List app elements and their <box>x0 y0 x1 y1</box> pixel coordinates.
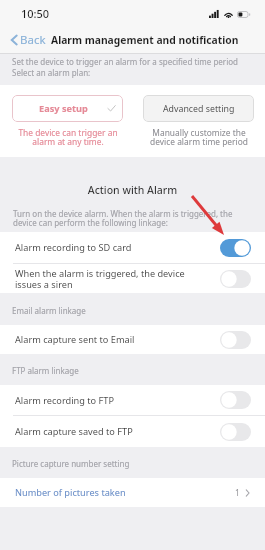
staticText: Manually customize the device alarm time… <box>150 127 248 148</box>
button[interactable]: Alarm capture saved to FTP <box>0 416 265 447</box>
staticText: Alarm capture sent to Email <box>15 333 220 346</box>
staticText: 1 <box>235 487 240 499</box>
staticText: Email alarm linkage <box>12 305 86 316</box>
staticText: Alarm recording to FTP <box>15 394 220 407</box>
staticText: The device can trigger an alarm at any t… <box>18 127 118 148</box>
button[interactable]: Alarm capture sent to Email <box>0 325 265 354</box>
button[interactable]: Back <box>10 32 46 48</box>
staticText: Alarm capture saved to FTP <box>15 425 220 438</box>
staticText: Easy setup <box>39 102 88 115</box>
button[interactable]: When the alarm is triggered, the device … <box>0 264 265 293</box>
staticText: Turn on the device alarm. When the alarm… <box>13 208 233 229</box>
button[interactable]: Alarm recording to SD card <box>0 232 265 263</box>
staticText: Picture capture number setting <box>12 458 130 469</box>
button[interactable]: Easy setup <box>12 95 123 122</box>
button[interactable]: Alarm recording to FTP <box>0 385 265 415</box>
staticText: FTP alarm linkage <box>12 365 79 376</box>
staticText: Alarm management and notification <box>51 33 239 47</box>
staticText: Advanced setting <box>163 103 235 115</box>
staticText: Alarm recording to SD card <box>15 241 220 254</box>
staticText: Number of pictures taken <box>15 486 235 499</box>
staticText: 10:50 <box>21 6 50 21</box>
button[interactable]: Advanced setting <box>143 95 254 122</box>
staticText: Set the device to trigger an alarm for a… <box>12 56 238 67</box>
button[interactable]: Number of pictures taken <box>0 478 265 507</box>
staticText: Back <box>20 32 46 48</box>
staticText: Action with Alarm <box>0 183 265 197</box>
staticText: Select an alarm plan: <box>12 67 91 78</box>
staticText: When the alarm is triggered, the device … <box>15 267 220 290</box>
